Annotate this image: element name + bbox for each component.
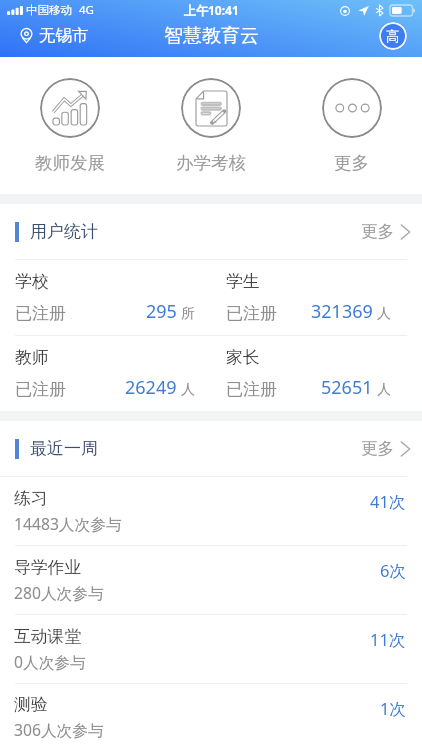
staticText: 4G: [79, 2, 94, 18]
button[interactable]: 用户统计: [0, 204, 422, 259]
staticText: 1次: [380, 697, 406, 720]
button[interactable]: 办学考核: [140, 57, 281, 194]
button[interactable]: 更多: [281, 57, 422, 194]
staticText: 教师发展: [35, 152, 105, 174]
staticText: 家长: [226, 347, 260, 368]
staticText: 学校: [15, 271, 49, 292]
staticText: 最近一周: [30, 438, 98, 459]
button[interactable]: 高: [379, 22, 407, 50]
staticText: 教师: [15, 347, 49, 368]
staticText: 0人次参与: [14, 651, 86, 672]
staticText: 已注册: [15, 379, 66, 400]
staticText: 练习: [14, 488, 48, 509]
staticText: 41次: [370, 490, 406, 513]
staticText: 中国移动: [26, 3, 72, 17]
staticText: 办学考核: [176, 152, 246, 174]
staticText: 人: [377, 381, 391, 399]
staticText: 智慧教育云: [164, 24, 259, 48]
staticText: 14483人次参与: [14, 513, 122, 534]
staticText: 已注册: [226, 379, 277, 400]
button[interactable]: 最近一周: [0, 421, 422, 476]
staticText: 人: [181, 381, 195, 399]
button[interactable]: 测验: [0, 684, 422, 750]
button[interactable]: 无锡市: [18, 25, 89, 46]
staticText: 所: [181, 305, 195, 323]
button[interactable]: 导学作业: [0, 546, 422, 614]
staticText: 测验: [14, 694, 48, 715]
staticText: 321369: [311, 299, 373, 324]
button[interactable]: 教师发展: [0, 57, 140, 194]
staticText: 295: [146, 299, 177, 324]
staticText: 上午10:41: [184, 2, 239, 18]
staticText: 52651: [321, 375, 373, 400]
staticText: 6次: [380, 559, 406, 582]
staticText: 导学作业: [14, 557, 82, 578]
staticText: 306人次参与: [14, 719, 104, 740]
button[interactable]: 学生: [211, 260, 422, 335]
staticText: 更多: [334, 152, 369, 174]
staticText: 11次: [370, 628, 406, 651]
staticText: 280人次参与: [14, 582, 104, 603]
button[interactable]: 学校: [0, 260, 211, 335]
button[interactable]: 教师: [0, 336, 211, 411]
staticText: 人: [377, 305, 391, 323]
staticText: 更多: [361, 438, 394, 459]
button[interactable]: 家长: [211, 336, 422, 411]
staticText: 学生: [226, 271, 260, 292]
staticText: 更多: [361, 221, 394, 242]
button[interactable]: 互动课堂: [0, 615, 422, 683]
staticText: 已注册: [15, 303, 66, 324]
staticText: 无锡市: [39, 25, 89, 46]
staticText: 高: [386, 28, 400, 45]
staticText: 用户统计: [30, 221, 98, 242]
staticText: 已注册: [226, 303, 277, 324]
staticText: 互动课堂: [14, 626, 82, 647]
staticText: 26249: [125, 375, 177, 400]
button[interactable]: 练习: [0, 477, 422, 545]
